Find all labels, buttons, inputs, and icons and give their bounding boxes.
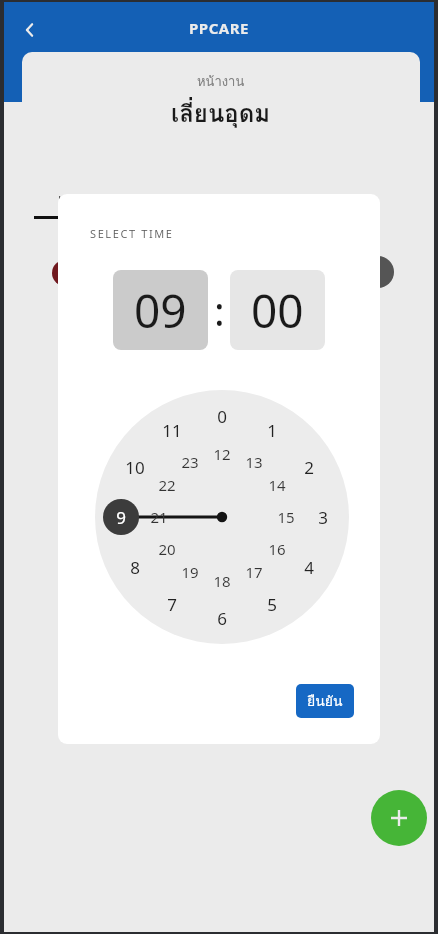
- staticText: PPCARE: [189, 18, 249, 38]
- button[interactable]: 1: [255, 413, 289, 447]
- staticText: :: [214, 283, 225, 337]
- button[interactable]: 17: [237, 555, 271, 589]
- staticText: 23: [181, 452, 199, 472]
- button[interactable]: 23: [173, 445, 207, 479]
- button[interactable]: 12: [205, 437, 239, 471]
- staticText: 13: [245, 452, 263, 472]
- button[interactable]: เวร: [48, 180, 224, 218]
- button[interactable]: 9: [104, 500, 138, 534]
- button[interactable]: 13: [237, 445, 271, 479]
- button[interactable]: 6: [205, 601, 239, 635]
- staticText: หน้างาน: [197, 71, 245, 92]
- staticText: 15: [277, 507, 295, 527]
- staticText: 8: [130, 556, 140, 579]
- staticText: 18: [213, 571, 231, 591]
- staticText: SELECT TIME: [90, 226, 174, 241]
- button[interactable]: 3: [306, 500, 340, 534]
- button[interactable]: 18: [205, 564, 239, 598]
- staticText: 00: [251, 279, 304, 342]
- button[interactable]: Back: [10, 10, 50, 50]
- staticText: 3: [318, 506, 328, 529]
- button[interactable]: หน้างาน: [22, 52, 420, 150]
- staticText: 9: [116, 506, 126, 529]
- button[interactable]: 09: [113, 270, 208, 350]
- button[interactable]: 5: [255, 587, 289, 621]
- staticText: 1: [267, 419, 277, 442]
- button[interactable]: 4: [292, 550, 326, 584]
- staticText: 21: [150, 507, 168, 527]
- staticText: 5: [267, 593, 277, 616]
- staticText: 17: [245, 562, 263, 582]
- staticText: เลี่ยนอุดม: [171, 94, 271, 132]
- staticText: 20: [158, 539, 176, 559]
- button[interactable]: 21: [142, 500, 176, 534]
- button[interactable]: 15: [269, 500, 303, 534]
- staticText: 19: [181, 562, 199, 582]
- staticText: ยืนยัน: [307, 690, 343, 712]
- staticText: 22: [158, 475, 176, 495]
- button[interactable]: 19: [173, 555, 207, 589]
- button[interactable]: 16: [260, 532, 294, 566]
- staticText: 2: [304, 456, 314, 479]
- button[interactable]: 20: [150, 532, 184, 566]
- staticText: 10: [125, 456, 145, 479]
- staticText: 6: [217, 607, 227, 630]
- button[interactable]: Add: [371, 790, 427, 846]
- staticText: เวร: [58, 188, 79, 210]
- button[interactable]: 22: [150, 468, 184, 502]
- button[interactable]: 10: [118, 450, 152, 484]
- staticText: 16: [268, 539, 286, 559]
- staticText: 4: [304, 556, 314, 579]
- button[interactable]: 00: [230, 270, 325, 350]
- button[interactable]: ยืนยัน: [296, 684, 354, 718]
- button[interactable]: 0: [205, 399, 239, 433]
- staticText: 14: [268, 475, 286, 495]
- button[interactable]: 14: [260, 468, 294, 502]
- staticText: 12: [213, 444, 231, 464]
- staticText: 0: [217, 405, 227, 428]
- button[interactable]: 11: [155, 413, 189, 447]
- button[interactable]: 2: [292, 450, 326, 484]
- staticText: 09: [134, 279, 187, 342]
- button[interactable]: 7: [155, 587, 189, 621]
- button[interactable]: 8: [118, 550, 152, 584]
- staticText: 7: [167, 593, 177, 616]
- staticText: 11: [162, 419, 182, 442]
